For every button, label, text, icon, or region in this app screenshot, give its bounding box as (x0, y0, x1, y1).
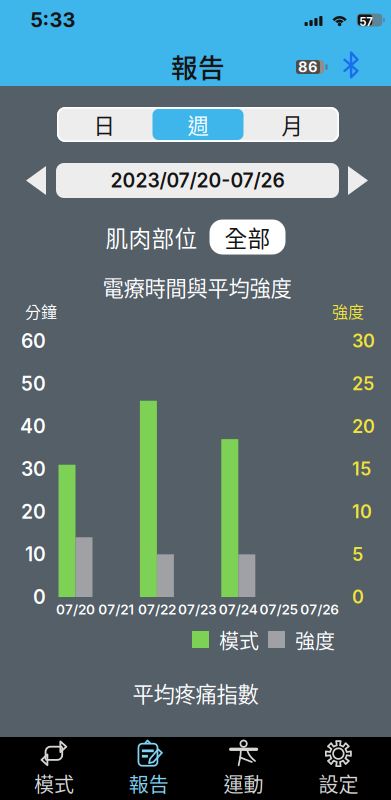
staticText: 分鐘 (25, 299, 57, 323)
staticText: 0 (33, 585, 46, 609)
button[interactable]: 報告 (101, 737, 196, 800)
staticText: 07/26 (300, 601, 339, 618)
staticText: 設定 (318, 769, 358, 798)
staticText: 30 (21, 457, 46, 481)
staticText: 2023/07/20-07/26 (110, 169, 284, 192)
staticText: 15 (352, 458, 371, 480)
staticText: 07/22 (138, 601, 176, 618)
staticText: 週 (187, 109, 208, 140)
staticText: 日 (93, 109, 114, 140)
button[interactable]: 月 (245, 107, 339, 142)
button[interactable]: 設定 (291, 737, 386, 800)
staticText: 強度 (332, 299, 364, 323)
staticText: 10 (352, 501, 372, 523)
button[interactable]: 全部 (209, 219, 285, 254)
staticText: 40 (20, 415, 46, 438)
staticText: 20 (21, 500, 46, 523)
staticText: 50 (21, 372, 46, 395)
button[interactable]: 週 (151, 107, 245, 142)
staticText: 10 (25, 543, 46, 566)
staticText: 07/24 (219, 601, 258, 618)
staticText: 0 (352, 586, 364, 608)
staticText: 07/25 (259, 601, 298, 618)
button[interactable]: 2023/07/20-07/26 (56, 163, 339, 198)
staticText: 肌肉部位 (105, 221, 197, 253)
staticText: 報告 (171, 47, 225, 85)
staticText: 57 (359, 15, 373, 29)
button[interactable]: 日 (57, 107, 151, 142)
staticText: 07/23 (178, 601, 217, 618)
staticText: 模式 (34, 769, 74, 798)
button[interactable]: Next week (340, 159, 375, 201)
staticText: 86 (298, 58, 318, 76)
staticText: 60 (21, 329, 46, 353)
staticText: 強度 (295, 625, 335, 654)
staticText: 20 (352, 415, 375, 437)
staticText: 報告 (129, 769, 169, 798)
staticText: 5:33 (30, 8, 75, 32)
staticText: 電療時間與平均強度 (102, 272, 291, 302)
staticText: 模式 (219, 625, 259, 654)
staticText: 月 (281, 109, 302, 140)
staticText: 07/20 (56, 601, 95, 618)
button[interactable]: 模式 (7, 737, 101, 800)
staticText: 25 (352, 373, 374, 395)
staticText: 07/21 (98, 601, 134, 618)
staticText: 5 (352, 543, 363, 565)
staticText: 全部 (224, 221, 270, 253)
button[interactable]: Previous week (18, 159, 53, 201)
button[interactable]: Bluetooth (341, 51, 360, 78)
button[interactable]: 運動 (196, 737, 291, 800)
staticText: 運動 (224, 769, 264, 798)
staticText: 30 (352, 330, 375, 352)
staticText: 平均疼痛指數 (132, 678, 258, 708)
